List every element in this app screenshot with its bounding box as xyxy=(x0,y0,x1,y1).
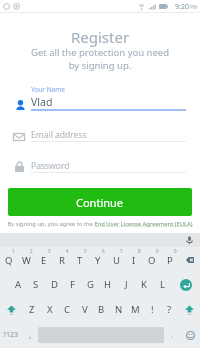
staticText: Get all the protection you need by signi… xyxy=(0,46,200,72)
button[interactable]: ! xyxy=(144,297,161,322)
staticText: J xyxy=(125,278,128,291)
button[interactable]: H xyxy=(99,272,117,297)
button[interactable]: Shift xyxy=(178,297,200,322)
staticText: D xyxy=(51,278,58,291)
button[interactable]: 1 xyxy=(0,247,17,272)
staticText: 0 xyxy=(174,248,177,254)
staticText: N xyxy=(115,303,123,316)
button[interactable]: 4 xyxy=(53,247,71,272)
staticText: PM xyxy=(190,4,197,10)
button[interactable]: Shift xyxy=(0,297,23,322)
button[interactable]: D xyxy=(45,272,63,297)
button[interactable]: 8 xyxy=(125,247,143,272)
button[interactable]: 0 xyxy=(161,247,179,272)
staticText: M xyxy=(131,303,140,316)
button[interactable]: Continue xyxy=(8,188,192,216)
button[interactable]: J xyxy=(117,272,135,297)
staticText: . xyxy=(171,329,174,340)
button[interactable]: Backspace xyxy=(179,247,200,272)
staticText: K xyxy=(141,278,147,291)
staticText: ? xyxy=(167,303,172,316)
staticText: By signing up, you agree to the End User… xyxy=(7,220,193,228)
staticText: C xyxy=(64,303,71,316)
staticText: 4 xyxy=(66,248,69,254)
staticText: G xyxy=(87,278,94,291)
button[interactable]: Voice input xyxy=(186,236,193,245)
staticText: T xyxy=(77,254,83,267)
button[interactable]: Emoji xyxy=(180,322,200,348)
button[interactable]: C xyxy=(59,297,76,322)
staticText: R xyxy=(59,254,65,267)
button[interactable]: ?123 xyxy=(0,322,22,348)
staticText: O xyxy=(148,254,156,267)
staticText: Vlad xyxy=(31,95,53,109)
staticText: ?123 xyxy=(3,330,19,340)
staticText: E xyxy=(41,254,47,267)
button[interactable]: K xyxy=(135,272,153,297)
staticText: Q xyxy=(5,254,13,267)
button[interactable]: N xyxy=(110,297,127,322)
staticText: Y xyxy=(95,254,101,267)
staticText: 8 xyxy=(138,248,141,254)
button[interactable]: 6 xyxy=(89,247,107,272)
staticText: 5 xyxy=(84,248,87,254)
staticText: L xyxy=(160,278,165,291)
staticText: Password xyxy=(31,160,70,172)
button[interactable]: 5 xyxy=(71,247,89,272)
staticText: F xyxy=(70,278,75,291)
button[interactable]: B xyxy=(93,297,110,322)
button[interactable]: 7 xyxy=(107,247,125,272)
staticText: I xyxy=(132,254,136,267)
staticText: H xyxy=(104,278,112,291)
button[interactable]: X xyxy=(41,297,59,322)
staticText: V xyxy=(82,303,88,316)
button[interactable]: M xyxy=(127,297,144,322)
staticText: ! xyxy=(151,303,154,316)
staticText: 2 xyxy=(30,248,33,254)
button[interactable]: Z xyxy=(23,297,41,322)
staticText: B xyxy=(98,303,105,316)
staticText: Your Name xyxy=(31,85,66,94)
button[interactable]: S xyxy=(27,272,45,297)
staticText: 1 xyxy=(12,248,15,254)
button[interactable]: V xyxy=(76,297,93,322)
staticText: Register xyxy=(0,27,200,47)
button[interactable]: Enter xyxy=(171,272,200,297)
button[interactable]: 9 xyxy=(143,247,161,272)
staticText: W xyxy=(22,254,31,267)
button[interactable]: 2 xyxy=(17,247,35,272)
staticText: S xyxy=(33,278,39,291)
staticText: 9:20 xyxy=(175,2,189,12)
staticText: 6 xyxy=(102,248,105,254)
button[interactable]: L xyxy=(153,272,171,297)
button[interactable]: By signing up, you agree to the End User… xyxy=(0,218,200,229)
staticText: 7 xyxy=(120,248,123,254)
button[interactable]: , xyxy=(22,322,38,348)
staticText: Continue xyxy=(76,195,124,210)
staticText: X xyxy=(47,303,53,316)
staticText: Z xyxy=(29,303,35,316)
staticText: 9 xyxy=(156,248,159,254)
button[interactable]: G xyxy=(81,272,99,297)
button[interactable]: 3 xyxy=(35,247,53,272)
staticText: Email address xyxy=(31,129,87,141)
button[interactable]: . xyxy=(164,322,180,348)
staticText: P xyxy=(167,254,173,267)
button[interactable]: F xyxy=(63,272,81,297)
staticText: U xyxy=(113,254,120,267)
staticText: A xyxy=(15,278,22,291)
button[interactable]: ? xyxy=(161,297,178,322)
staticText: , xyxy=(29,329,32,340)
button[interactable]: A xyxy=(9,272,27,297)
staticText: 3 xyxy=(48,248,51,254)
